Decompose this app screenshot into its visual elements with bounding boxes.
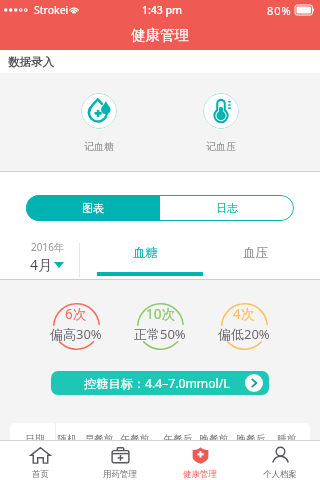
staticText: 健康管理 xyxy=(131,26,189,44)
staticText: 2016年 xyxy=(31,240,64,254)
button[interactable]: Medication xyxy=(80,441,160,480)
button[interactable]: Health xyxy=(160,441,240,480)
button[interactable]: 控糖目标：4.4–7.0mmol/L xyxy=(51,371,269,395)
staticText: 午餐前 xyxy=(115,433,155,440)
staticText: 血糖 xyxy=(133,245,158,261)
staticText: 6次 xyxy=(65,305,87,323)
staticText: 偏低20% xyxy=(218,325,270,343)
button[interactable]: 血压 xyxy=(200,240,310,266)
button[interactable]: Home xyxy=(0,441,80,480)
staticText: 1:43 pm xyxy=(142,3,183,17)
staticText: 用药管理 xyxy=(103,469,137,480)
staticText: 控糖目标：4.4–7.0mmol/L xyxy=(84,375,230,392)
button[interactable]: Profile xyxy=(240,441,320,480)
staticText: 随机 xyxy=(47,433,87,440)
staticText: 健康管理 xyxy=(183,469,217,480)
staticText: 数据录入 xyxy=(8,55,54,69)
staticText: 正常50% xyxy=(134,325,186,343)
staticText: Strokei xyxy=(34,3,69,17)
staticText: 记血糖 xyxy=(84,140,114,153)
staticText: 4月 xyxy=(30,255,53,274)
staticText: 80% xyxy=(267,3,292,18)
staticText: 个人档案 xyxy=(263,469,297,480)
staticText: 午餐后 xyxy=(158,433,198,440)
staticText: 首页 xyxy=(32,469,49,480)
button[interactable]: 日期 xyxy=(10,423,310,440)
staticText: 记血压 xyxy=(206,140,236,153)
button[interactable]: 血糖 xyxy=(90,240,200,266)
button[interactable]: 日志 xyxy=(160,195,294,221)
button[interactable]: 图表 xyxy=(26,195,160,221)
staticText: 10次 xyxy=(146,305,175,323)
staticText: 日志 xyxy=(216,201,238,215)
staticText: 4次 xyxy=(233,305,255,323)
button[interactable]: 2016年 xyxy=(15,240,79,274)
staticText: 血压 xyxy=(243,245,268,261)
staticText: 日期 xyxy=(15,433,55,440)
staticText: 图表 xyxy=(82,201,104,215)
staticText: 晚餐后 xyxy=(231,433,271,440)
staticText: 睡前 xyxy=(267,433,307,440)
staticText: 晚餐前 xyxy=(194,433,234,440)
button[interactable]: 记血压 xyxy=(160,73,282,171)
button[interactable]: 记血糖 xyxy=(38,73,160,171)
staticText: 偏高30% xyxy=(50,325,102,343)
staticText: 早餐前 xyxy=(79,433,119,440)
